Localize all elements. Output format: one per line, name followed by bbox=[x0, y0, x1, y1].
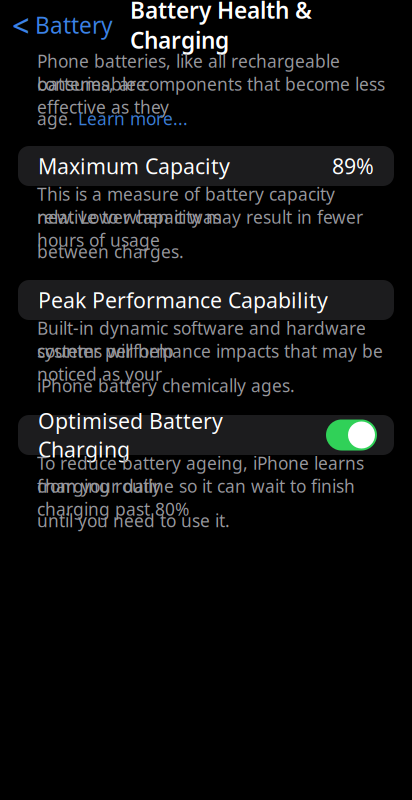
staticText: To reduce battery ageing, iPhone learns … bbox=[37, 451, 364, 497]
button[interactable]: < bbox=[0, 0, 113, 51]
button[interactable]: Learn more... bbox=[78, 107, 188, 130]
staticText: Learn more... bbox=[78, 107, 188, 130]
staticText: Built-in dynamic software and hardware s… bbox=[37, 316, 366, 362]
staticText: Phone batteries, like all rechargeable b… bbox=[37, 49, 340, 95]
button[interactable]: Optimised Battery Charging bbox=[18, 415, 394, 455]
staticText: Battery bbox=[35, 10, 113, 40]
staticText: new. Lower capacity may result in fewer … bbox=[37, 205, 363, 251]
staticText: until you need to use it. bbox=[37, 509, 230, 532]
staticText: consumable components that become less e… bbox=[37, 72, 385, 118]
staticText: charging routine so it can wait to finis… bbox=[37, 474, 355, 520]
staticText: 89% bbox=[332, 152, 374, 180]
button[interactable]: Maximum Capacity bbox=[18, 146, 394, 186]
staticText: < bbox=[12, 5, 30, 45]
staticText: Battery Health & Charging bbox=[130, 0, 312, 55]
staticText: Optimised Battery Charging bbox=[38, 407, 223, 463]
staticText: Peak Performance Capability bbox=[38, 286, 328, 314]
staticText: Maximum Capacity bbox=[38, 152, 230, 180]
staticText: iPhone battery chemically ages. bbox=[37, 374, 295, 397]
staticText: counter performance impacts that may be … bbox=[37, 339, 383, 385]
staticText: This is a measure of battery capacity re… bbox=[37, 182, 335, 228]
staticText: age. bbox=[37, 107, 78, 130]
button[interactable]: Peak Performance Capability bbox=[18, 280, 394, 320]
staticText: between charges. bbox=[37, 240, 184, 263]
